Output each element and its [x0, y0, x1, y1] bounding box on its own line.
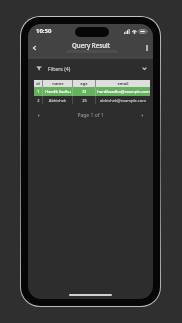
- staticText: Filters (4): [48, 65, 71, 72]
- staticText: 1: [37, 89, 40, 94]
- staticText: id: [36, 81, 40, 86]
- button[interactable]: Filters (4): [28, 59, 153, 80]
- staticText: 31: [82, 89, 87, 94]
- staticText: age: [80, 81, 88, 86]
- button[interactable]: 1: [34, 87, 150, 96]
- staticText: 25: [82, 98, 87, 103]
- button[interactable]: Next page: [138, 111, 147, 120]
- staticText: Page 1 of 1: [43, 112, 138, 119]
- button[interactable]: More options: [140, 41, 153, 54]
- staticText: email: [117, 81, 129, 86]
- button[interactable]: 2: [34, 96, 150, 104]
- staticText: Abhishek Suthar: [43, 98, 72, 103]
- staticText: Query Result: [72, 41, 111, 49]
- button[interactable]: Back: [28, 41, 41, 54]
- button[interactable]: Previous page: [34, 111, 43, 120]
- staticText: abhishek@example.com: [100, 98, 146, 103]
- staticText: 10:50: [36, 27, 52, 35]
- staticText: 2: [37, 98, 40, 103]
- staticText: name: [52, 81, 64, 86]
- staticText: hardiksadhu@example.com: [97, 89, 150, 94]
- staticText: Hardik Sadhu: [45, 89, 71, 94]
